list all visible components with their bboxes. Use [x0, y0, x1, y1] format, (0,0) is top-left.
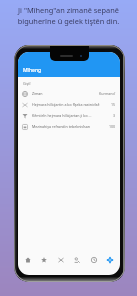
button[interactable]: Kêmtirîn hejmara hilbijartan ji bo ...: [18, 110, 120, 121]
staticText: Hejmara hilbijartin a bo fîşeka rastnivî…: [32, 102, 109, 107]
staticText: Giştî: [23, 81, 31, 86]
staticText: Mîheng: [23, 67, 42, 74]
button[interactable]: Ziman: [18, 88, 120, 99]
staticText: 3: [113, 113, 116, 118]
staticText: Kurmancî: [99, 91, 116, 96]
button[interactable]: Search: [70, 253, 84, 267]
button[interactable]: Hejmara hilbijartin a bo fîşeka rastnivî…: [18, 99, 120, 110]
button[interactable]: Settings: [103, 253, 117, 267]
staticText: Ziman: [32, 91, 97, 96]
staticText: 15: [111, 102, 116, 107]
button[interactable]: Mezinahiya refrandin tebeknivîsan: [18, 121, 120, 132]
staticText: Kêmtirîn hejmara hilbijartan ji bo ...: [32, 113, 111, 118]
button[interactable]: History: [87, 253, 101, 267]
button[interactable]: Home: [21, 253, 35, 267]
button[interactable]: Shuffle: [54, 253, 68, 267]
staticText: 100: [109, 124, 116, 129]
staticText: Ji "Mîheng"an zimanê sepanê biguherîne û…: [0, 5, 137, 26]
button[interactable]: Favourites: [37, 253, 51, 267]
staticText: Mezinahiya refrandin tebeknivîsan: [32, 124, 107, 129]
